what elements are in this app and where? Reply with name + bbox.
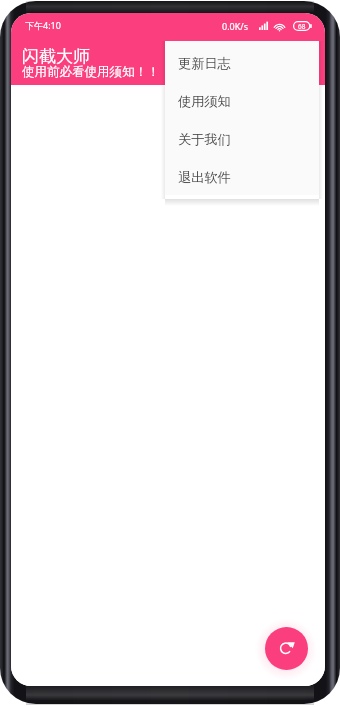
staticText: 使用前必看使用须知！！！ bbox=[22, 64, 172, 80]
staticText: 0.0K/s bbox=[222, 20, 248, 32]
staticText: 闪截大师 bbox=[22, 46, 90, 67]
button[interactable]: 退出软件 bbox=[165, 158, 319, 196]
staticText: 更新日志 bbox=[178, 55, 231, 72]
staticText: 退出软件 bbox=[178, 169, 231, 186]
staticText: 关于我们 bbox=[178, 131, 231, 148]
staticText: 使用须知 bbox=[178, 93, 231, 110]
button[interactable]: 更新日志 bbox=[165, 44, 319, 82]
button[interactable]: 使用须知 bbox=[165, 82, 319, 120]
button[interactable]: Refresh bbox=[265, 627, 308, 670]
staticText: 68 bbox=[298, 22, 306, 31]
staticText: 下午4:10 bbox=[25, 19, 61, 31]
button[interactable]: 关于我们 bbox=[165, 120, 319, 158]
